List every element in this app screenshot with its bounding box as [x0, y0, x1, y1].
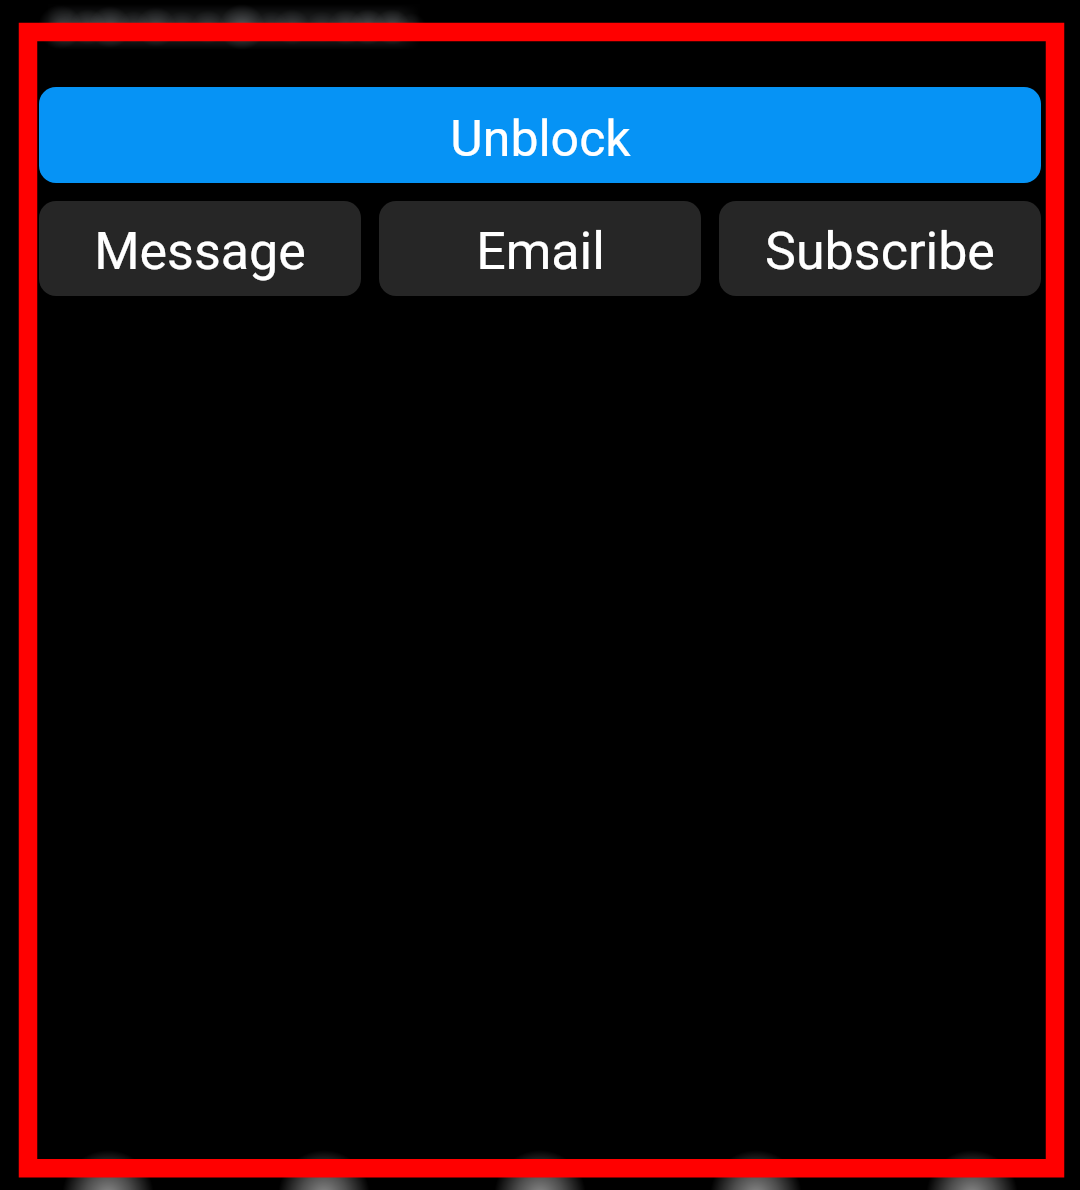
staticText: Email	[476, 221, 605, 282]
staticText: Message	[94, 221, 306, 282]
button[interactable]: Email	[379, 201, 701, 296]
button[interactable]: Message	[39, 201, 361, 296]
staticText: Subscribe	[765, 221, 995, 282]
staticText: Unblock	[450, 110, 631, 169]
other: Bottom navigation	[0, 0, 1080, 1190]
button[interactable]: Subscribe	[719, 201, 1041, 296]
button[interactable]: Unblock	[39, 87, 1041, 183]
